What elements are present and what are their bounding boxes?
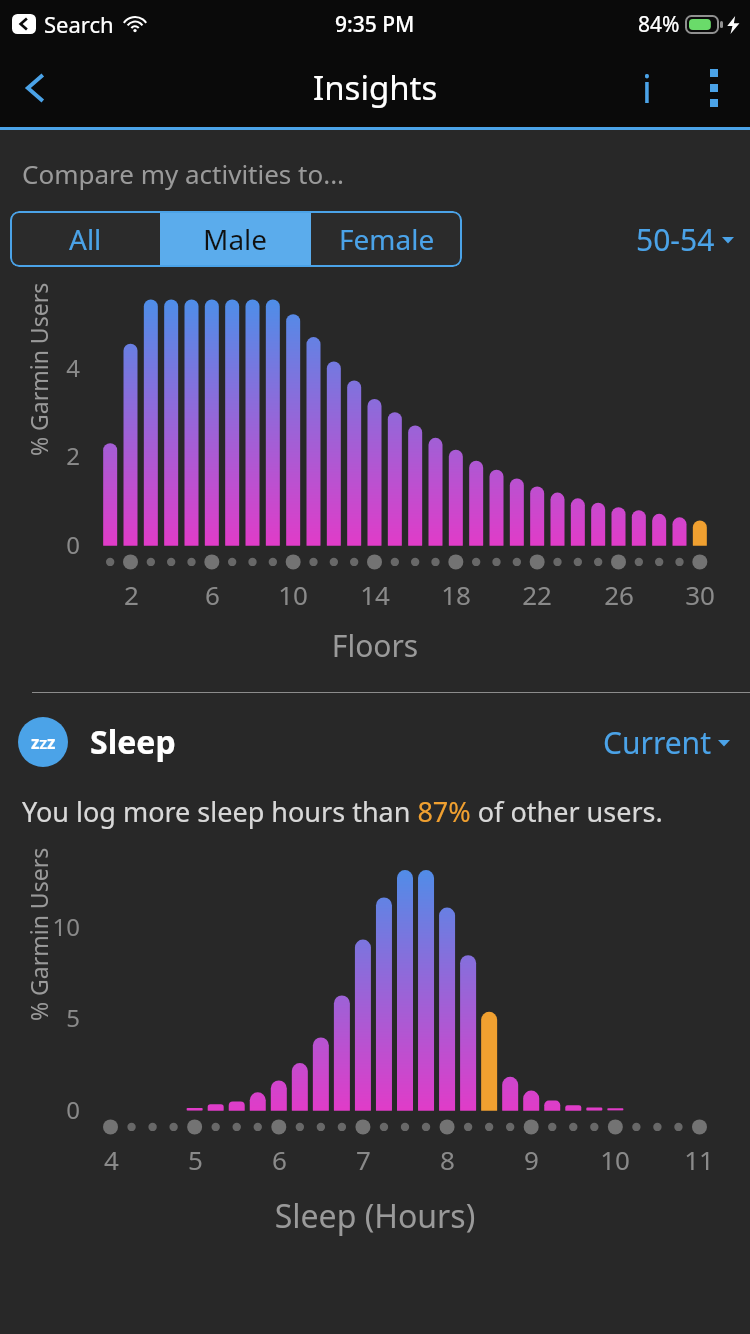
- button[interactable]: More options: [678, 52, 750, 124]
- staticText: All: [69, 220, 102, 258]
- staticText: 4: [104, 1142, 119, 1177]
- staticText: 30: [685, 577, 715, 612]
- staticText: 6: [205, 577, 220, 612]
- staticText: 8: [440, 1142, 455, 1177]
- staticText: 10: [600, 1142, 630, 1177]
- staticText: 0: [66, 1093, 80, 1126]
- button[interactable]: 50-54: [636, 219, 734, 260]
- button[interactable]: Male: [160, 211, 311, 267]
- staticText: 11: [684, 1142, 714, 1177]
- staticText: 5: [188, 1142, 203, 1177]
- staticText: Insights: [313, 65, 438, 110]
- staticText: Sleep (Hours): [0, 1194, 750, 1238]
- staticText: Female: [339, 220, 435, 258]
- staticText: 6: [272, 1142, 287, 1177]
- staticText: 10: [278, 577, 308, 612]
- staticText: % Garmin Users: [23, 282, 54, 456]
- staticText: 84%: [638, 10, 680, 39]
- staticText: 14: [360, 577, 390, 612]
- staticText: Sleep: [90, 720, 176, 764]
- staticText: Male: [203, 220, 268, 258]
- staticText: 18: [441, 577, 471, 612]
- staticText: 5: [66, 1001, 80, 1034]
- staticText: 2: [66, 439, 80, 472]
- staticText: 9:35 PM: [335, 10, 415, 39]
- staticText: 7: [356, 1142, 371, 1177]
- staticText: 22: [522, 577, 552, 612]
- staticText: Current: [603, 722, 711, 763]
- staticText: 2: [124, 577, 139, 612]
- button[interactable]: Back: [8, 60, 64, 116]
- staticText: 50-54: [636, 219, 715, 260]
- button[interactable]: Female: [311, 211, 462, 267]
- staticText: 4: [66, 351, 80, 384]
- staticText: 9: [524, 1142, 539, 1177]
- button[interactable]: Information: [616, 57, 678, 119]
- staticText: i: [642, 62, 652, 114]
- staticText: You log more sleep hours than 87% of oth…: [22, 793, 663, 830]
- staticText: Compare my activities to...: [22, 156, 345, 191]
- button[interactable]: All: [10, 211, 160, 267]
- staticText: 10: [52, 910, 80, 943]
- button[interactable]: Current: [603, 722, 730, 763]
- staticText: Search: [44, 9, 114, 39]
- staticText: zZz: [31, 731, 56, 754]
- staticText: 0: [66, 528, 80, 561]
- staticText: Floors: [0, 625, 750, 666]
- staticText: % Garmin Users: [23, 847, 54, 1021]
- staticText: 26: [604, 577, 634, 612]
